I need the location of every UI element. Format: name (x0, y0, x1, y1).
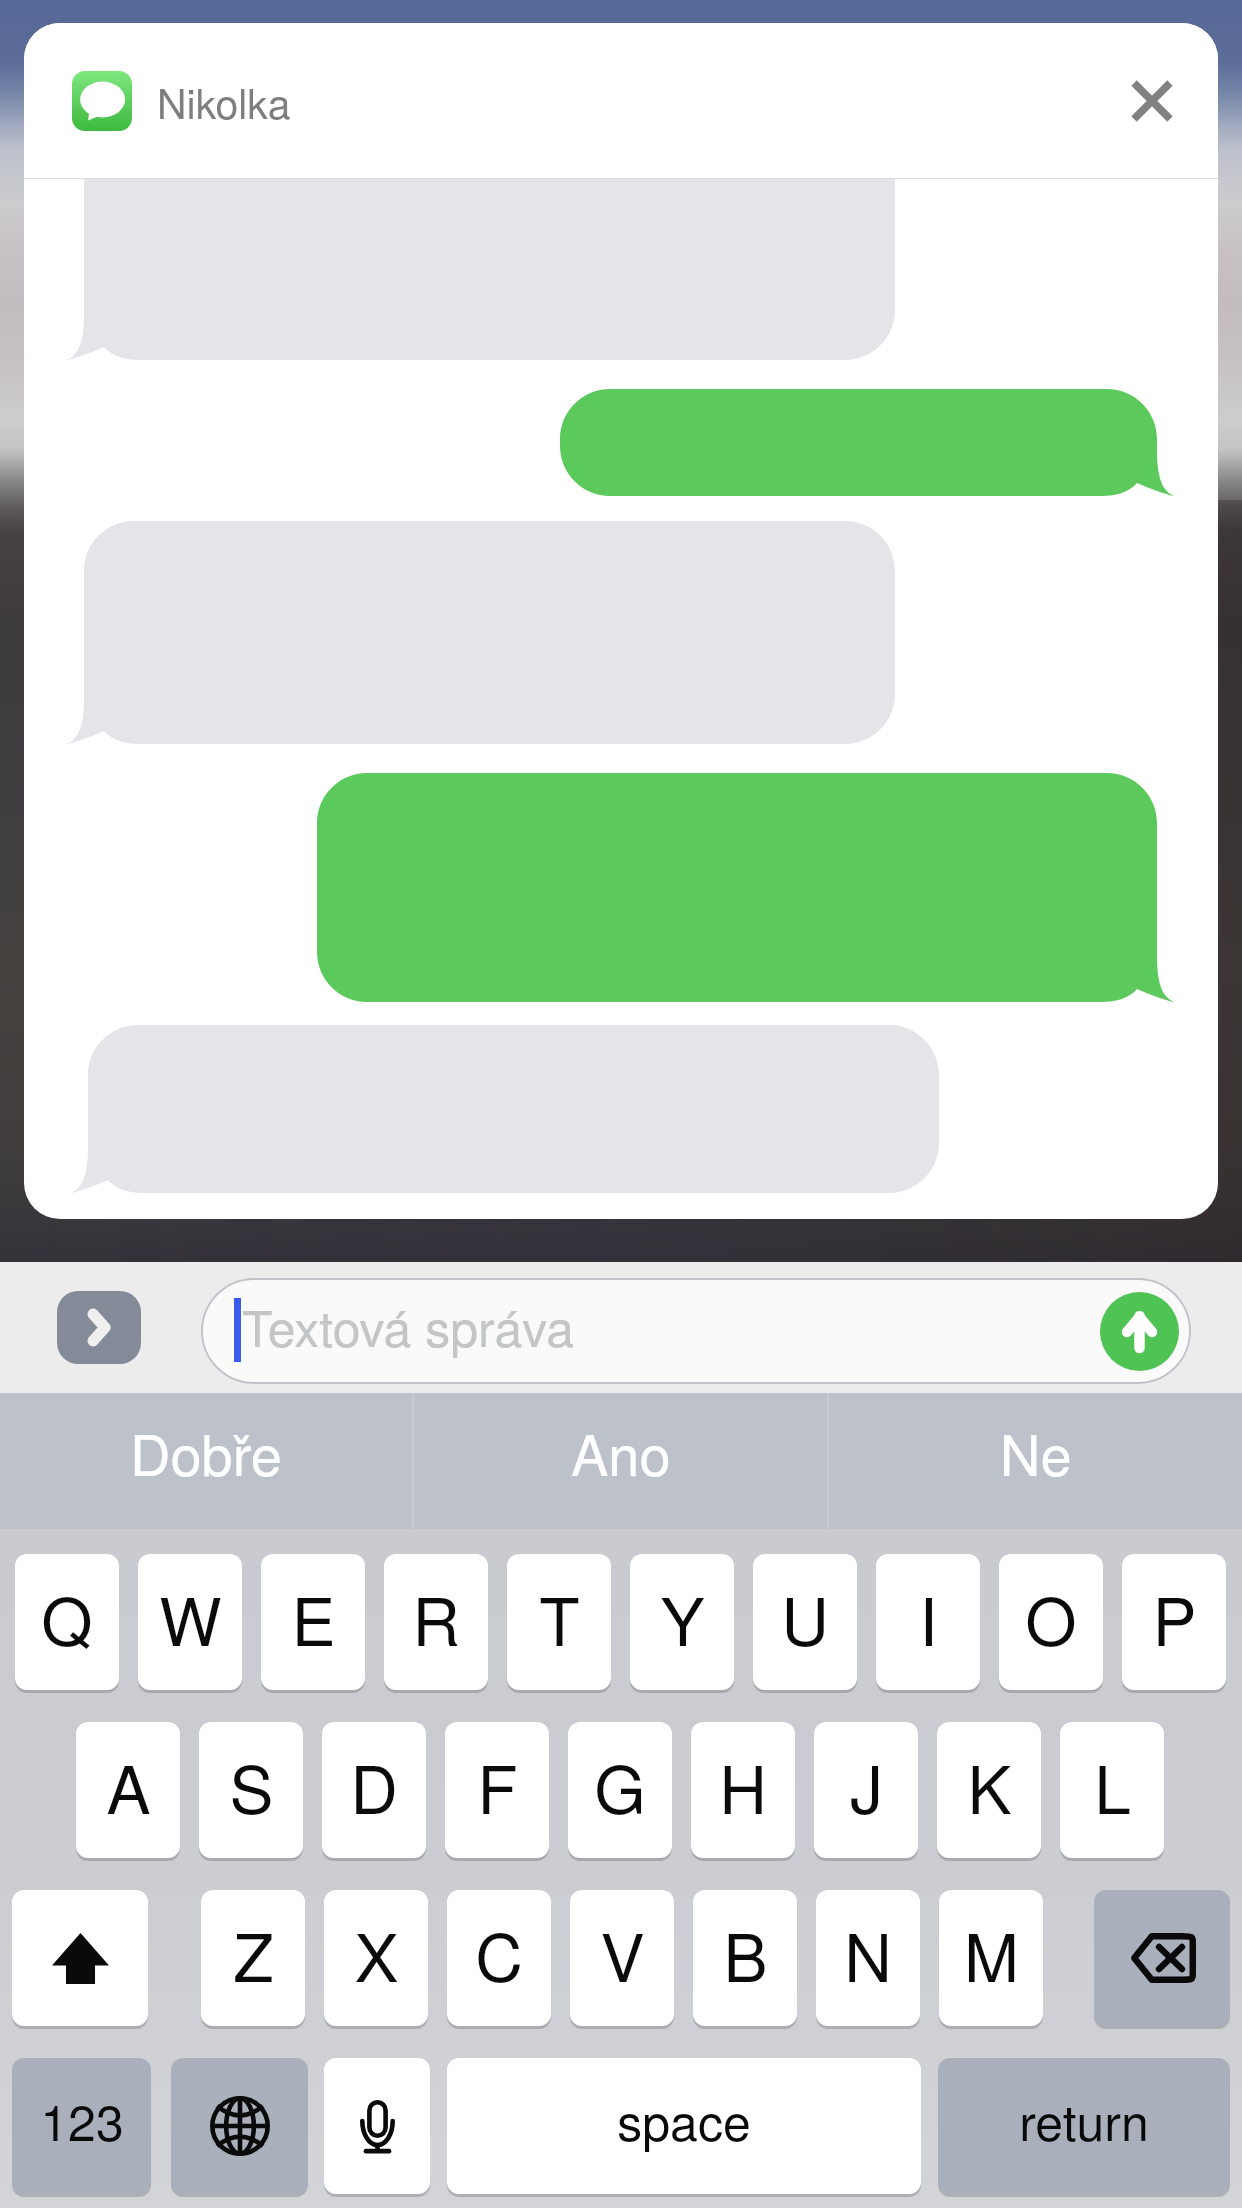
staticText: Ano (571, 1412, 671, 1492)
staticText: Textová správa (242, 1290, 575, 1362)
button[interactable]: Dictation (324, 2058, 430, 2194)
button[interactable]: S (199, 1722, 303, 1858)
staticText: E (291, 1570, 336, 1665)
staticText: Q (41, 1570, 93, 1665)
button[interactable]: D (322, 1722, 426, 1858)
button[interactable]: N (816, 1890, 920, 2026)
staticText: Dobře (130, 1412, 282, 1492)
button[interactable]: K (937, 1722, 1041, 1858)
button[interactable]: T (507, 1554, 611, 1690)
staticText: A (106, 1738, 151, 1833)
staticText: H (719, 1738, 767, 1833)
staticText: R (412, 1570, 460, 1665)
staticText: Ne (1000, 1412, 1072, 1492)
staticText: V (600, 1906, 645, 2001)
button[interactable]: Y (630, 1554, 734, 1690)
staticText: S (229, 1738, 274, 1833)
staticText: Z (233, 1906, 274, 2001)
staticText: W (159, 1570, 222, 1665)
button[interactable]: space (447, 2058, 921, 2194)
staticText: T (539, 1570, 580, 1665)
button[interactable]: Show apps (57, 1291, 141, 1364)
staticText: L (1094, 1738, 1131, 1833)
button[interactable]: Ne (829, 1393, 1242, 1529)
staticText: I (919, 1570, 938, 1665)
staticText: J (850, 1738, 883, 1833)
button[interactable]: Q (15, 1554, 119, 1690)
button[interactable]: Z (201, 1890, 305, 2026)
button[interactable]: G (568, 1722, 672, 1858)
staticText: C (475, 1906, 523, 2001)
button[interactable]: A (76, 1722, 180, 1858)
button[interactable]: U (753, 1554, 857, 1690)
button[interactable]: E (261, 1554, 365, 1690)
staticText: Nikolka (157, 72, 291, 131)
button[interactable]: X (324, 1890, 428, 2026)
button[interactable]: Dobře (0, 1393, 412, 1529)
button[interactable]: O (999, 1554, 1103, 1690)
button[interactable]: W (138, 1554, 242, 1690)
button[interactable]: P (1122, 1554, 1226, 1690)
staticText: O (1025, 1570, 1077, 1665)
button[interactable]: M (939, 1890, 1043, 2026)
button[interactable]: Shift (12, 1890, 148, 2026)
staticText: return (1019, 2084, 1149, 2156)
staticText: D (350, 1738, 398, 1833)
button[interactable]: Ano (414, 1393, 827, 1529)
staticText: Y (660, 1570, 705, 1665)
staticText: B (723, 1906, 768, 2001)
button[interactable]: Change keyboard (171, 2058, 308, 2194)
button[interactable]: Send (1100, 1292, 1179, 1371)
button[interactable]: R (384, 1554, 488, 1690)
button[interactable]: F (445, 1722, 549, 1858)
staticText: 123 (40, 2084, 124, 2156)
button[interactable]: 123 (12, 2058, 151, 2194)
button[interactable]: I (876, 1554, 980, 1690)
button[interactable]: H (691, 1722, 795, 1858)
button[interactable]: return (938, 2058, 1230, 2194)
staticText: U (781, 1570, 829, 1665)
button[interactable]: J (814, 1722, 918, 1858)
staticText: N (844, 1906, 892, 2001)
staticText: P (1152, 1570, 1197, 1665)
button[interactable]: B (693, 1890, 797, 2026)
staticText: G (594, 1738, 646, 1833)
button[interactable]: C (447, 1890, 551, 2026)
staticText: F (477, 1738, 518, 1833)
button[interactable]: Textová správa (201, 1278, 1191, 1384)
button[interactable]: Backspace (1094, 1890, 1230, 2026)
staticText: space (617, 2084, 751, 2156)
button[interactable]: L (1060, 1722, 1164, 1858)
staticText: X (354, 1906, 399, 2001)
button[interactable]: Close (1104, 53, 1200, 149)
staticText: K (967, 1738, 1012, 1833)
button[interactable]: V (570, 1890, 674, 2026)
staticText: M (964, 1906, 1019, 2001)
